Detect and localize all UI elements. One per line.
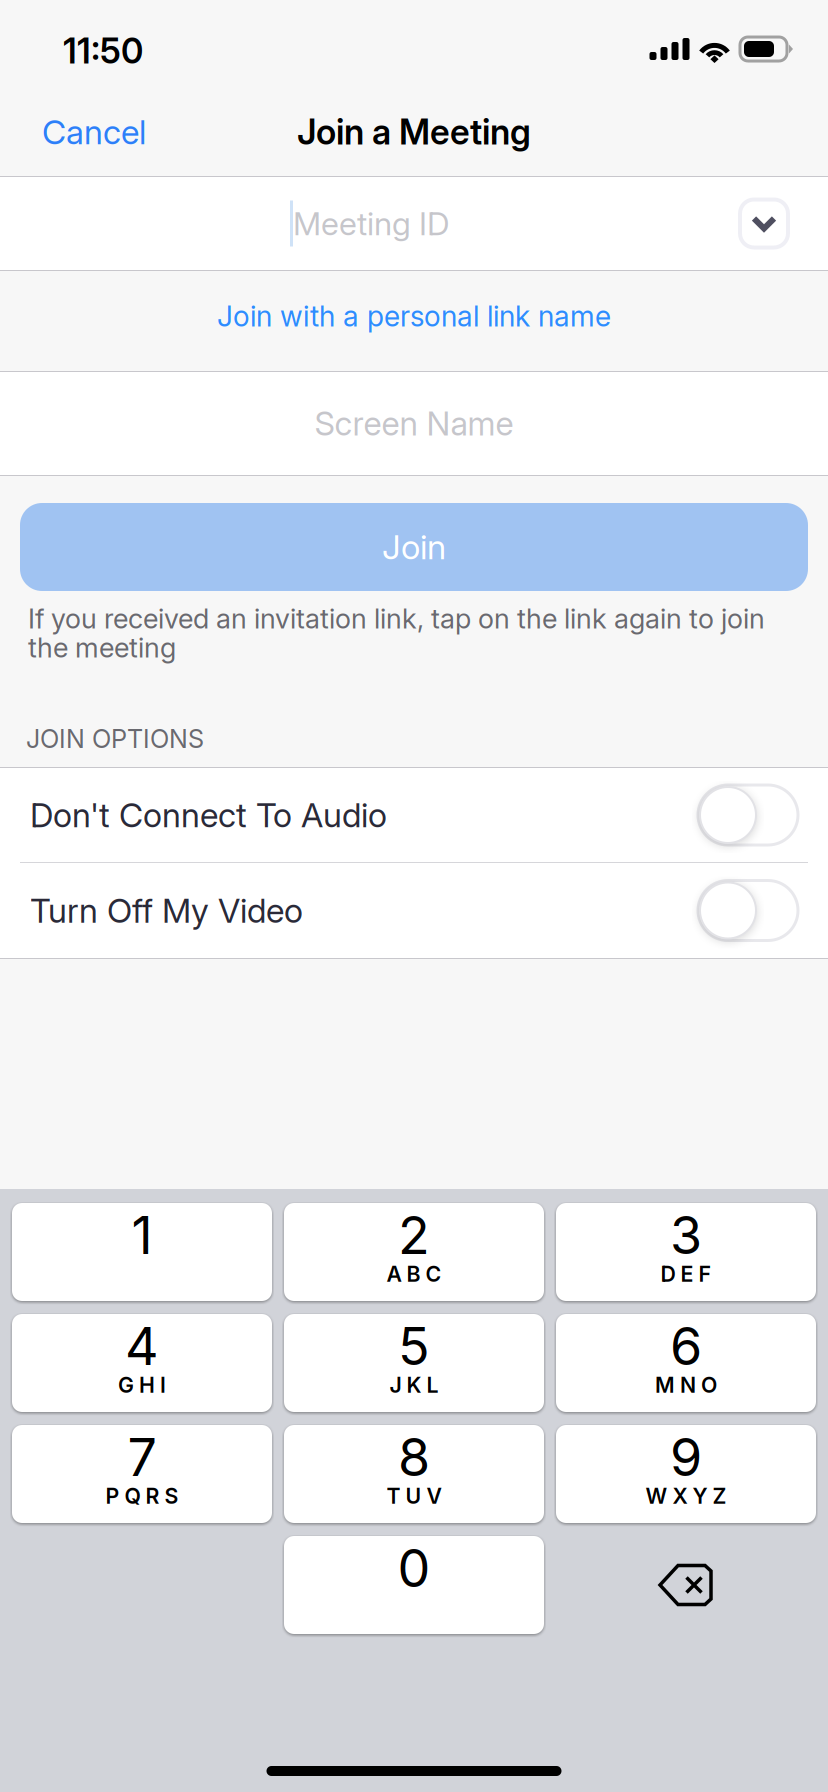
staticText: JOIN OPTIONS [26,723,204,754]
staticText: P Q R S [105,1483,178,1509]
button[interactable]: Join with a personal link name [0,271,828,371]
button[interactable]: Turn Off My Video [0,863,828,958]
button[interactable]: 9 [556,1425,816,1523]
staticText: Turn Off My Video [30,890,303,931]
staticText: the meeting [28,631,176,664]
button[interactable]: Delete [556,1536,816,1634]
staticText: 8 [398,1425,430,1488]
staticText: Screen Name [314,404,513,443]
staticText: 6 [670,1314,702,1377]
staticText: A B C [386,1261,441,1287]
staticText: T U V [386,1483,441,1509]
button[interactable]: 6 [556,1314,816,1412]
staticText: Meeting ID [293,204,450,243]
button[interactable]: Cancel [0,88,188,176]
staticText: 11:50 [63,30,143,72]
staticText: 7 [127,1425,156,1488]
staticText: D E F [660,1261,711,1287]
button[interactable]: 1 [12,1203,272,1301]
button[interactable]: 4 [12,1314,272,1412]
staticText: Join a Meeting [297,111,531,153]
staticText: Don't Connect To Audio [30,795,387,835]
staticText: J K L [389,1372,438,1398]
button[interactable]: 2 [284,1203,544,1301]
staticText: 1 [131,1203,152,1266]
staticText: 0 [397,1536,430,1599]
staticText: 2 [398,1203,430,1266]
button[interactable]: Show recent meeting IDs [740,199,788,247]
button[interactable]: 5 [284,1314,544,1412]
staticText: 9 [670,1425,702,1488]
staticText: 5 [398,1314,430,1377]
staticText: G H I [118,1372,166,1398]
button[interactable]: 0 [284,1536,544,1634]
button[interactable]: 7 [12,1425,272,1523]
staticText: M N O [655,1372,717,1398]
staticText: Cancel [42,112,146,152]
staticText: Join [382,526,446,567]
staticText: 4 [125,1314,159,1377]
staticText: Join with a personal link name [217,299,611,333]
staticText: 3 [670,1203,702,1266]
button[interactable]: 3 [556,1203,816,1301]
button[interactable]: Don't Connect To Audio [0,768,828,862]
button[interactable]: 8 [284,1425,544,1523]
staticText: W X Y Z [645,1483,726,1509]
button[interactable]: Join [20,503,808,591]
staticText: If you received an invitation link, tap … [28,602,765,635]
